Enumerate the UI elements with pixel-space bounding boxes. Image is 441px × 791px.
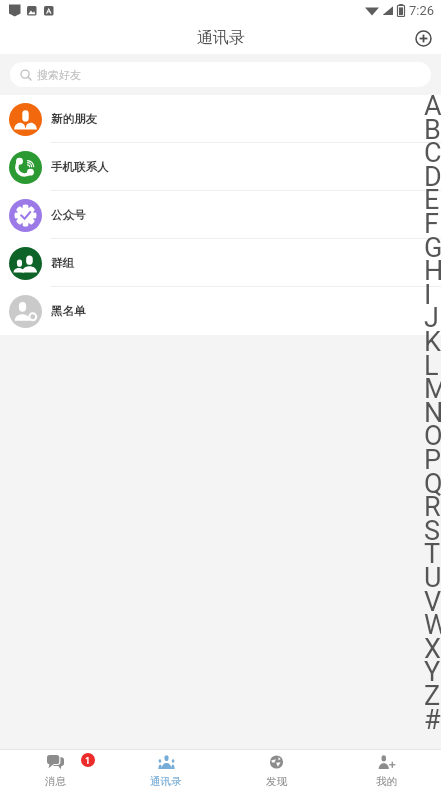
staticText: 发现 — [266, 775, 287, 788]
staticText: 通讯录 — [197, 28, 245, 48]
staticText: D — [424, 161, 441, 191]
staticText: I — [424, 279, 432, 309]
staticText: 手机联系人 — [51, 160, 109, 174]
staticText: 消息 — [45, 775, 66, 788]
staticText: O — [424, 420, 441, 450]
staticText: Z — [424, 680, 441, 710]
staticText: F — [424, 208, 439, 238]
staticText: A — [424, 90, 441, 120]
staticText: M — [424, 373, 441, 403]
staticText: 1 — [85, 754, 91, 766]
staticText: 我的 — [376, 775, 397, 788]
staticText: G — [424, 232, 441, 262]
staticText: Y — [424, 656, 441, 686]
staticText: W — [424, 609, 441, 639]
button[interactable]: Add contact — [408, 23, 438, 53]
staticText: K — [424, 326, 441, 356]
staticText: C — [424, 137, 441, 167]
staticText: 搜索好友 — [37, 68, 81, 82]
staticText: N — [424, 397, 441, 427]
button[interactable]: 公众号 — [0, 191, 441, 239]
staticText: B — [424, 114, 441, 144]
staticText: S — [424, 515, 441, 545]
staticText: V — [424, 586, 441, 616]
staticText: 黑名单 — [51, 304, 86, 318]
staticText: # — [424, 704, 441, 734]
staticText: L — [424, 350, 439, 380]
staticText: T — [424, 538, 441, 568]
staticText: 7:26 — [409, 3, 435, 18]
button[interactable]: 手机联系人 — [0, 143, 441, 191]
button[interactable]: 发现 — [221, 750, 331, 791]
staticText: H — [424, 255, 441, 285]
staticText: X — [424, 633, 441, 663]
staticText: 通讯录 — [150, 775, 182, 788]
staticText: Q — [424, 468, 441, 498]
staticText: 新的朋友 — [51, 112, 97, 126]
button[interactable]: 1 — [0, 750, 111, 791]
staticText: E — [424, 184, 440, 214]
staticText: 群组 — [51, 256, 74, 270]
staticText: U — [424, 562, 441, 592]
staticText: R — [424, 491, 441, 521]
staticText: P — [424, 444, 441, 474]
button[interactable]: 黑名单 — [0, 287, 441, 335]
button[interactable]: 新的朋友 — [0, 95, 441, 143]
button[interactable]: 我的 — [331, 750, 441, 791]
button[interactable]: 搜索好友 — [10, 62, 431, 87]
staticText: J — [424, 302, 439, 332]
button[interactable]: 群组 — [0, 239, 441, 287]
button[interactable]: 通讯录 — [111, 750, 221, 791]
staticText: 公众号 — [51, 208, 86, 222]
